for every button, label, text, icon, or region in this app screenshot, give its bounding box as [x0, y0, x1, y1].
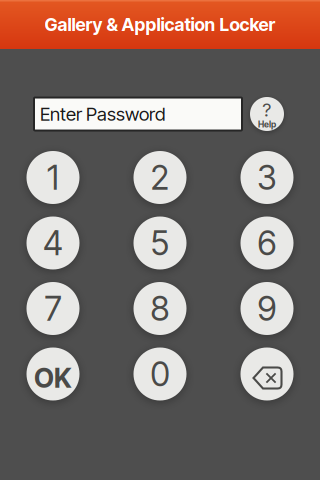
button[interactable]: 6: [240, 216, 293, 269]
button[interactable]: 4: [26, 216, 79, 269]
button[interactable]: 7: [26, 282, 79, 335]
button[interactable]: 1: [26, 151, 79, 204]
button[interactable]: 0: [133, 347, 186, 400]
staticText: 8: [150, 288, 169, 329]
staticText: 7: [44, 288, 61, 329]
button[interactable]: 2: [133, 151, 186, 204]
staticText: 9: [257, 288, 276, 329]
button[interactable]: OK: [26, 347, 79, 400]
staticText: Help: [258, 119, 276, 129]
staticText: 2: [150, 157, 169, 198]
staticText: Enter Password: [40, 103, 165, 125]
button[interactable]: Help: [250, 97, 284, 131]
button[interactable]: 8: [133, 282, 186, 335]
staticText: 5: [150, 223, 169, 263]
button[interactable]: Delete: [240, 347, 293, 400]
button[interactable]: 5: [133, 216, 186, 269]
staticText: 6: [257, 223, 276, 263]
button[interactable]: 9: [240, 282, 293, 335]
staticText: 0: [150, 354, 169, 394]
staticText: 4: [43, 223, 63, 263]
staticText: ?: [262, 98, 271, 121]
button[interactable]: 3: [240, 151, 293, 204]
staticText: Gallery & Application Locker: [44, 14, 275, 35]
staticText: 1: [47, 157, 59, 198]
staticText: 3: [257, 157, 277, 198]
staticText: OK: [34, 362, 72, 394]
